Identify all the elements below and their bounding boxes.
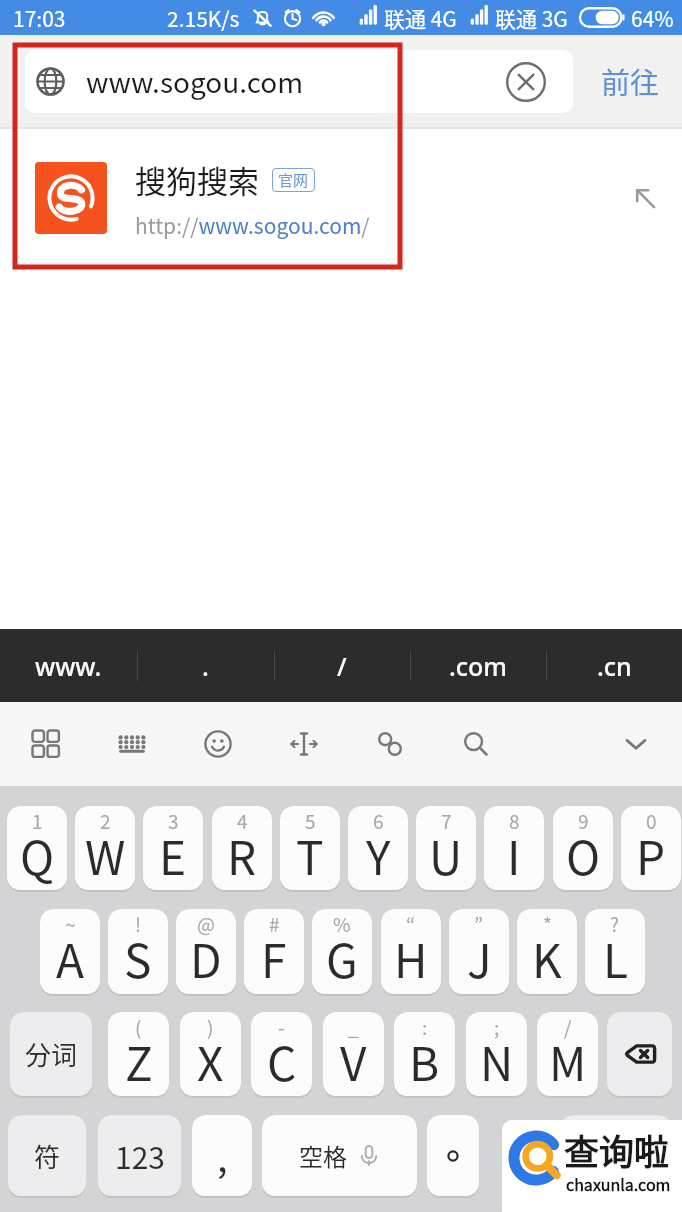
button[interactable]: _ <box>323 1012 384 1096</box>
staticText: http://www.sogou.com/ <box>135 210 370 240</box>
button[interactable]: 搜狗搜索 <box>0 129 682 267</box>
button[interactable]: 123 <box>98 1115 181 1196</box>
button[interactable]: 官网 <box>278 169 309 191</box>
button[interactable]: ” <box>449 909 509 994</box>
staticText: www. <box>35 649 102 683</box>
staticText: Y <box>366 822 391 889</box>
button[interactable]: 空格 <box>262 1115 417 1196</box>
staticText: O <box>566 822 601 889</box>
staticText: www.sogou.com <box>86 61 304 102</box>
button[interactable]: # <box>244 909 304 994</box>
staticText: 3 <box>168 807 179 835</box>
staticText: M <box>549 1028 587 1095</box>
staticText: 5 <box>305 807 316 835</box>
staticText: ? <box>610 910 620 938</box>
staticText: # <box>269 910 280 938</box>
button[interactable]: 7 <box>416 806 476 890</box>
staticText: 7 <box>441 807 452 835</box>
button[interactable]: . <box>137 629 274 702</box>
staticText: ~ <box>65 910 76 938</box>
button[interactable]: / <box>537 1012 598 1096</box>
button[interactable]: @ <box>176 909 236 994</box>
button[interactable]: ( <box>108 1012 169 1096</box>
staticText: 4 <box>237 807 248 835</box>
staticText: V <box>340 1028 367 1095</box>
button[interactable] <box>372 726 408 762</box>
button[interactable] <box>458 726 494 762</box>
button[interactable] <box>607 1012 672 1096</box>
button[interactable]: 查询啦 <box>502 1120 682 1212</box>
staticText: X <box>197 1028 224 1095</box>
button[interactable]: 前往 <box>601 60 660 102</box>
staticText: N <box>480 1028 514 1095</box>
staticText: .com <box>449 649 508 683</box>
button[interactable]: ~ <box>40 909 100 994</box>
button[interactable]: / <box>274 629 410 702</box>
staticText: ! <box>135 910 142 938</box>
staticText: 2.15K/s <box>167 3 240 33</box>
button[interactable]: 1 <box>7 806 67 890</box>
button[interactable] <box>503 59 549 105</box>
staticText: W <box>85 822 126 889</box>
button[interactable] <box>560 1115 672 1196</box>
button[interactable]: ; <box>466 1012 527 1096</box>
button[interactable]: .com <box>410 629 546 702</box>
button[interactable] <box>286 726 322 762</box>
button[interactable]: , <box>192 1115 252 1196</box>
staticText: / <box>337 649 347 683</box>
staticText: - <box>278 1013 285 1041</box>
staticText: 联通 3G <box>495 3 568 33</box>
button[interactable]: 9 <box>553 806 613 890</box>
staticText: H <box>394 925 428 992</box>
button[interactable]: .cn <box>546 629 682 702</box>
staticText: I <box>507 822 521 889</box>
staticText: 123 <box>115 1134 165 1177</box>
button[interactable] <box>427 1115 479 1196</box>
button[interactable]: * <box>517 909 577 994</box>
staticText: 分词 <box>25 1035 78 1073</box>
staticText: B <box>409 1028 440 1095</box>
button[interactable]: “ <box>381 909 441 994</box>
staticText: % <box>333 910 351 938</box>
button[interactable]: 4 <box>212 806 272 890</box>
staticText: : <box>422 1013 428 1041</box>
button[interactable]: 5 <box>280 806 340 890</box>
staticText: 9 <box>578 807 589 835</box>
staticText: 搜狗搜索 <box>135 157 259 202</box>
staticText: 6 <box>373 807 384 835</box>
button[interactable]: 符 <box>8 1115 86 1196</box>
staticText: J <box>467 925 492 992</box>
button[interactable] <box>114 726 150 762</box>
staticText: 0 <box>646 807 657 835</box>
button[interactable]: % <box>312 909 372 994</box>
button[interactable] <box>618 726 654 762</box>
button[interactable] <box>28 726 64 762</box>
button[interactable]: www. <box>0 629 137 702</box>
staticText: 2 <box>100 807 111 835</box>
button[interactable]: : <box>394 1012 455 1096</box>
button[interactable]: 6 <box>348 806 408 890</box>
staticText: E <box>159 822 187 889</box>
staticText: R <box>227 822 257 889</box>
button[interactable]: ) <box>180 1012 241 1096</box>
button[interactable]: ! <box>108 909 168 994</box>
staticText: ) <box>207 1013 214 1041</box>
button[interactable] <box>200 726 236 762</box>
staticText: 前往 <box>601 60 660 102</box>
button[interactable]: 8 <box>484 806 544 890</box>
staticText: ; <box>494 1013 500 1041</box>
staticText: 空格 <box>299 1138 347 1173</box>
button[interactable]: 2 <box>75 806 135 890</box>
staticText: P <box>636 822 666 889</box>
staticText: U <box>429 822 463 889</box>
staticText: / <box>564 1013 572 1041</box>
staticText: T <box>296 822 324 889</box>
staticText: 官网 <box>278 169 309 191</box>
button[interactable]: - <box>251 1012 312 1096</box>
staticText: .cn <box>597 649 632 683</box>
button[interactable]: ? <box>585 909 645 994</box>
button[interactable]: 3 <box>143 806 203 890</box>
button[interactable]: www.sogou.com <box>25 50 573 113</box>
button[interactable]: 0 <box>621 806 681 890</box>
button[interactable]: 分词 <box>10 1012 92 1096</box>
